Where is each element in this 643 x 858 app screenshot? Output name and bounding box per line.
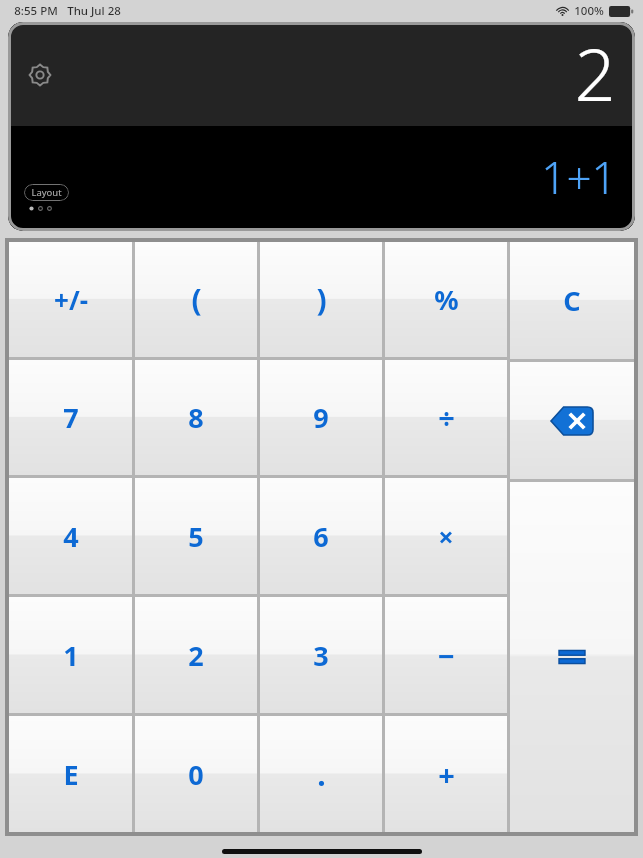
staticText: 2 xyxy=(574,24,616,120)
staticText: 8 xyxy=(188,399,204,436)
button[interactable]: 7 xyxy=(9,360,132,475)
button[interactable]: ( xyxy=(135,242,257,357)
button[interactable]: Layout xyxy=(24,184,69,201)
staticText: Layout xyxy=(31,186,62,199)
button[interactable]: Equals xyxy=(510,482,634,832)
button[interactable]: 9 xyxy=(260,360,382,475)
staticText: × xyxy=(438,518,454,555)
staticText: 0 xyxy=(188,756,204,793)
staticText: C xyxy=(563,282,581,319)
button[interactable]: 5 xyxy=(135,478,257,594)
button[interactable]: ) xyxy=(260,242,382,357)
staticText: 3 xyxy=(313,637,329,674)
staticText: ÷ xyxy=(438,398,455,437)
button[interactable]: +/- xyxy=(9,242,132,357)
button[interactable]: . xyxy=(260,716,382,832)
button[interactable]: 4 xyxy=(9,478,132,594)
button[interactable]: E xyxy=(9,716,132,832)
button[interactable]: 1 xyxy=(9,597,132,713)
button[interactable]: Backspace xyxy=(510,362,634,479)
button[interactable]: Settings xyxy=(27,62,53,88)
staticText: . xyxy=(317,754,326,795)
staticText: Thu Jul 28 xyxy=(67,3,121,19)
staticText: ( xyxy=(191,279,202,320)
staticText: ) xyxy=(316,279,327,320)
button[interactable]: + xyxy=(385,716,507,832)
staticText: % xyxy=(434,281,459,318)
button[interactable]: C xyxy=(510,242,634,359)
button[interactable]: 6 xyxy=(260,478,382,594)
staticText: +/- xyxy=(54,282,88,317)
staticText: E xyxy=(63,756,79,793)
staticText: + xyxy=(438,755,455,794)
button[interactable]: 3 xyxy=(260,597,382,713)
staticText: 5 xyxy=(188,518,204,555)
staticText: 6 xyxy=(313,518,329,555)
staticText: − xyxy=(438,636,455,675)
button[interactable]: 2 xyxy=(135,597,257,713)
button[interactable]: × xyxy=(385,478,507,594)
staticText: 1+1 xyxy=(541,147,617,207)
staticText: 8:55 PM xyxy=(14,3,58,19)
staticText: 1 xyxy=(63,637,79,674)
button[interactable]: 0 xyxy=(135,716,257,832)
button[interactable]: 8 xyxy=(135,360,257,475)
button[interactable]: % xyxy=(385,242,507,357)
staticText: 100% xyxy=(574,3,604,19)
button[interactable]: − xyxy=(385,597,507,713)
staticText: 2 xyxy=(188,637,204,674)
button[interactable]: ÷ xyxy=(385,360,507,475)
staticText: 7 xyxy=(63,399,79,436)
staticText: 4 xyxy=(63,518,79,555)
staticText: 9 xyxy=(313,399,329,436)
